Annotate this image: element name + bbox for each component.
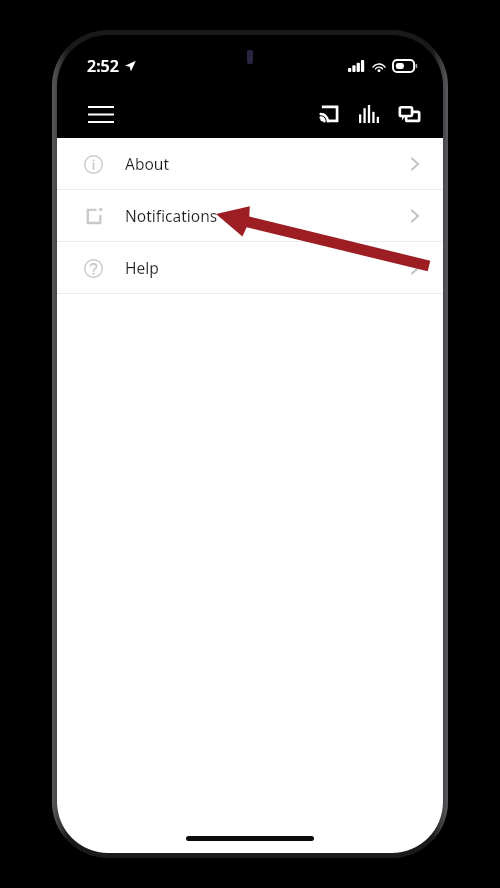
button[interactable]: Notifications xyxy=(57,190,443,241)
button[interactable]: Messages xyxy=(389,94,429,134)
staticText: Notifications xyxy=(125,205,218,226)
button[interactable]: Help xyxy=(57,242,443,293)
button[interactable]: Menu xyxy=(81,94,121,134)
staticText: About xyxy=(125,153,169,174)
staticText: Help xyxy=(125,257,159,278)
button[interactable]: About xyxy=(57,138,443,189)
button[interactable]: Equalizer xyxy=(349,94,389,134)
staticText: 2:52 xyxy=(87,55,119,77)
button[interactable]: Cast xyxy=(309,94,349,134)
